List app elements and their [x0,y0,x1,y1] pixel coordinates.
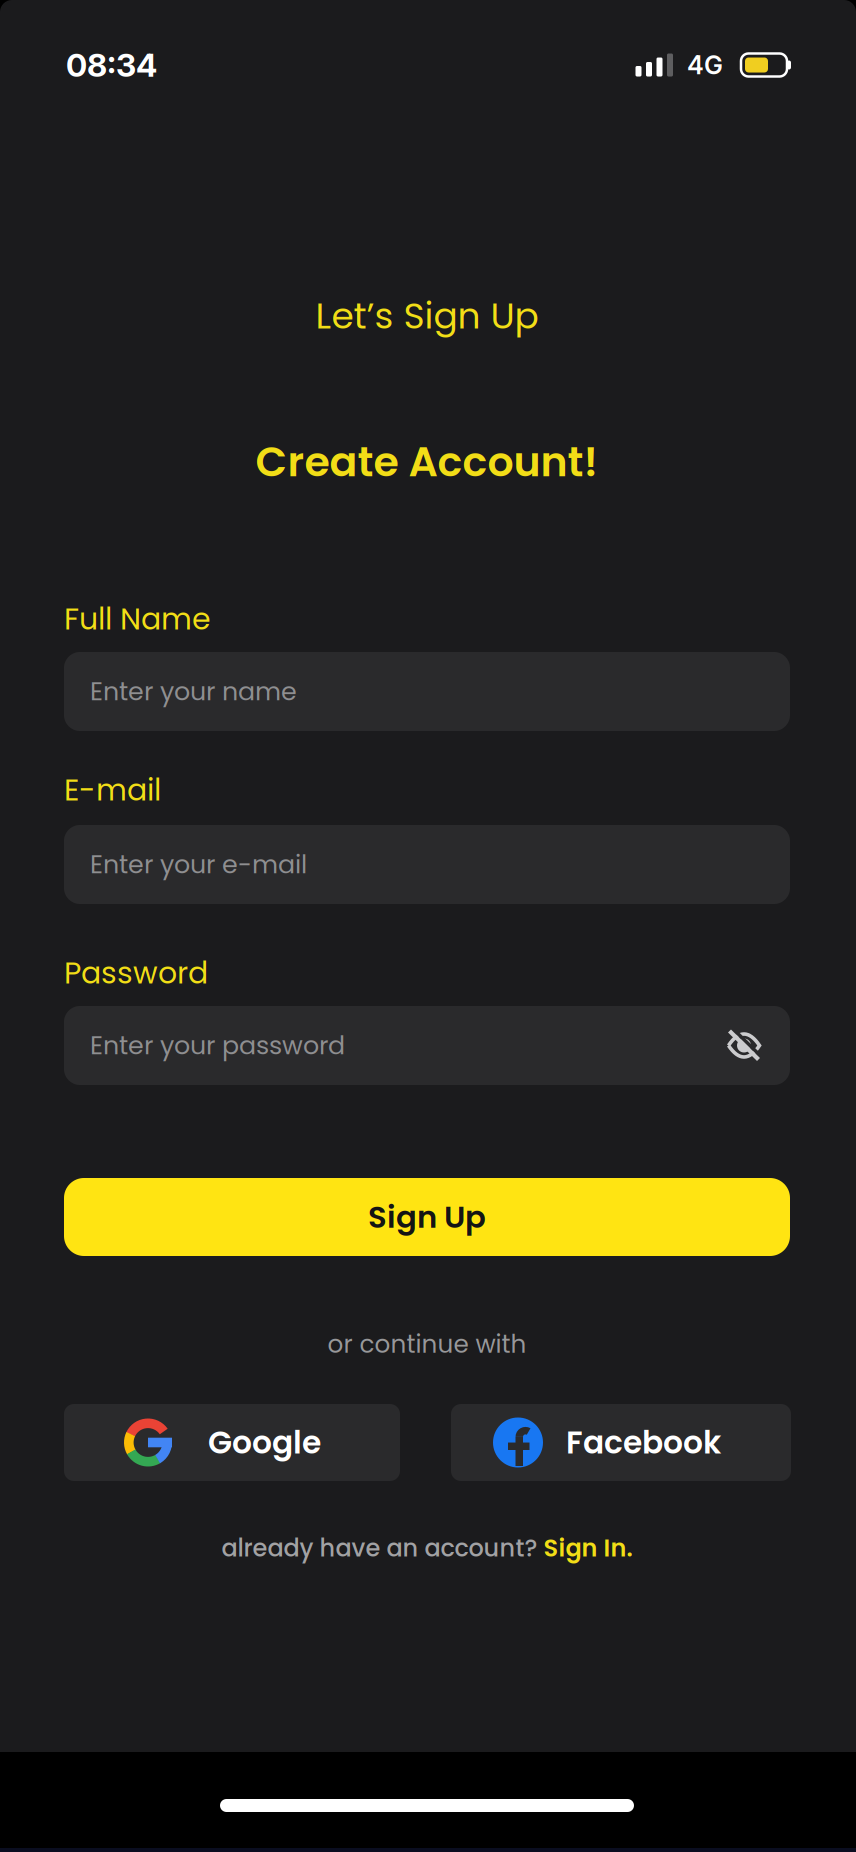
staticText: E-mail [64,769,161,811]
staticText: Enter your password [90,1028,345,1063]
staticText: Enter your name [90,674,297,709]
button[interactable]: Enter your password [64,1006,790,1085]
staticText: Facebook [566,1421,721,1464]
button[interactable]: already have an account? [221,1531,632,1565]
button[interactable]: Enter your e-mail [64,825,790,904]
button[interactable]: Sign Up [64,1178,790,1256]
button[interactable]: Enter your name [64,652,790,731]
staticText: Create Account! [255,433,598,491]
staticText: Let’s Sign Up [315,291,538,341]
staticText: Full Name [64,598,211,640]
button[interactable]: Show password [722,1023,766,1067]
staticText: or continue with [327,1327,526,1361]
staticText: Sign In. [543,1531,632,1565]
staticText: Enter your e-mail [90,847,307,882]
staticText: Sign Up [368,1195,486,1238]
button[interactable]: Google [64,1404,400,1481]
staticText: Google [208,1421,321,1464]
button[interactable]: Facebook [451,1404,791,1481]
staticText: 08:34 [66,46,157,84]
staticText: Password [64,952,208,994]
staticText: 4G [687,50,723,80]
staticText: already have an account? [221,1531,543,1565]
